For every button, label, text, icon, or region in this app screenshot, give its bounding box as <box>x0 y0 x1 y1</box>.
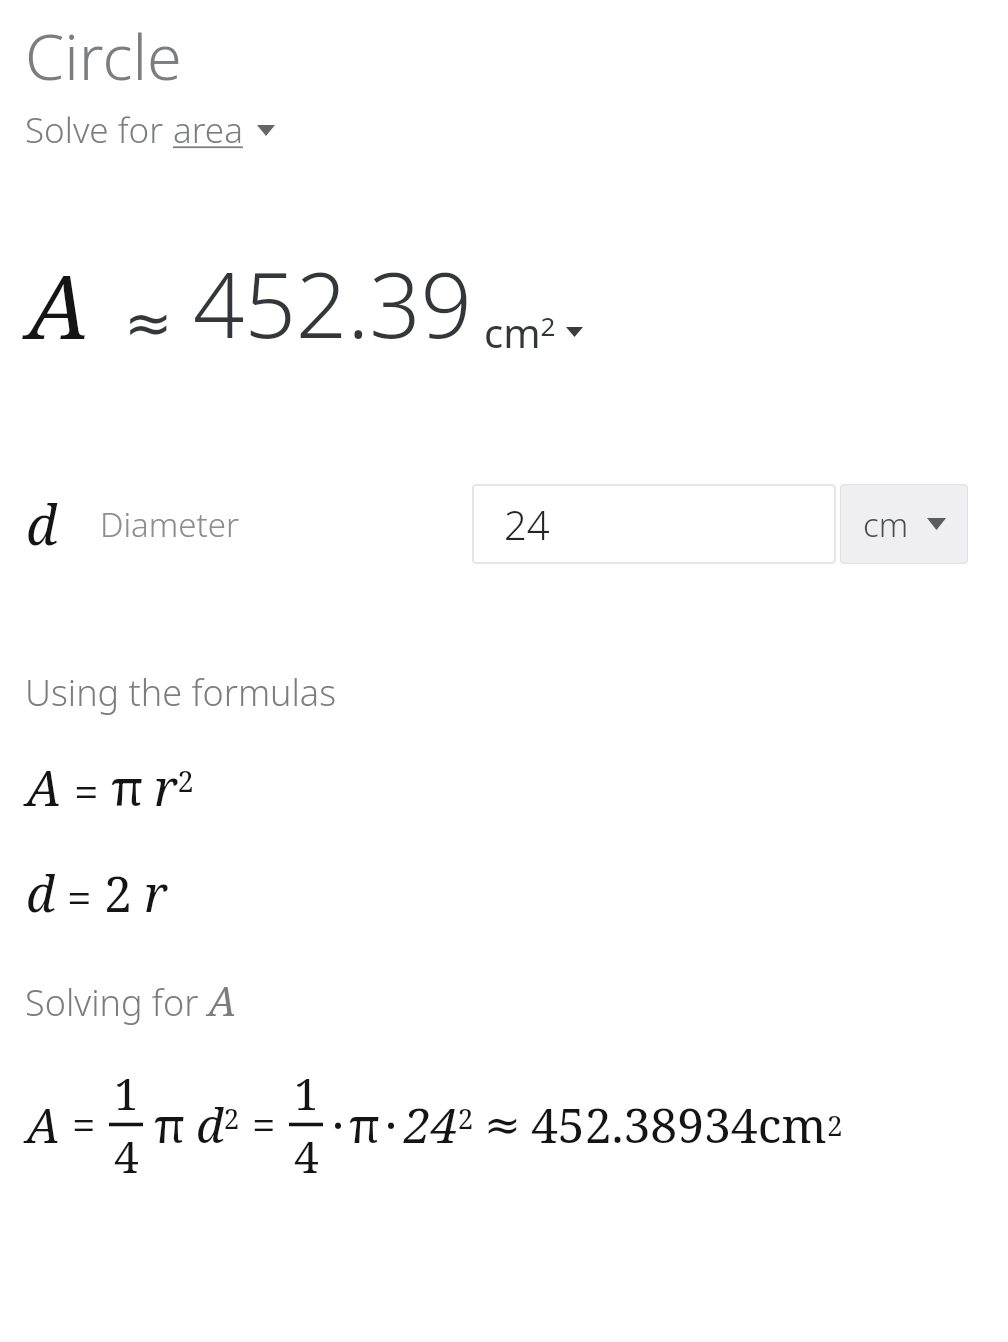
staticText: ≈ <box>484 1099 521 1150</box>
staticText: d <box>26 859 55 927</box>
staticText: 452.38934cm <box>531 1092 827 1157</box>
staticText: r2 <box>154 753 194 821</box>
staticText: = <box>74 761 99 821</box>
staticText: cm2 <box>484 305 556 359</box>
staticText: 452.39 <box>193 242 472 365</box>
staticText: · <box>385 1092 398 1157</box>
staticText: Solve for <box>25 106 173 154</box>
staticText: Circle <box>25 13 182 99</box>
staticText: cm <box>863 502 909 547</box>
staticText: · <box>332 1092 345 1157</box>
staticText: area <box>173 106 243 154</box>
staticText: A <box>208 973 237 1027</box>
staticText: 2 <box>104 859 132 927</box>
staticText: A <box>26 1092 60 1157</box>
button[interactable]: 24 <box>472 484 836 564</box>
staticText: Diameter <box>100 502 239 547</box>
staticText: 242 <box>404 1092 474 1157</box>
staticText: 1 <box>294 1063 319 1123</box>
staticText: Using the formulas <box>25 668 337 717</box>
staticText: 4 <box>294 1126 319 1186</box>
staticText: π <box>349 1092 381 1157</box>
staticText: = <box>252 1096 276 1153</box>
button[interactable]: area <box>173 106 275 154</box>
staticText: A <box>27 245 90 365</box>
staticText: = <box>67 867 92 927</box>
staticText: π <box>111 753 144 821</box>
staticText: π <box>154 1092 186 1157</box>
staticText: 24 <box>504 497 550 551</box>
staticText: ≈ <box>124 289 173 357</box>
staticText: 1 <box>114 1063 139 1123</box>
staticText: r <box>144 859 168 927</box>
staticText: 2 <box>827 1106 843 1144</box>
staticText: d <box>26 487 58 561</box>
staticText: Solving for <box>25 978 208 1027</box>
button[interactable]: Change unit <box>840 484 968 564</box>
staticText: = <box>72 1096 96 1153</box>
staticText: d2 <box>196 1092 240 1157</box>
staticText: 4 <box>114 1126 139 1186</box>
button[interactable]: cm2 <box>484 305 583 365</box>
staticText: A <box>26 753 62 821</box>
